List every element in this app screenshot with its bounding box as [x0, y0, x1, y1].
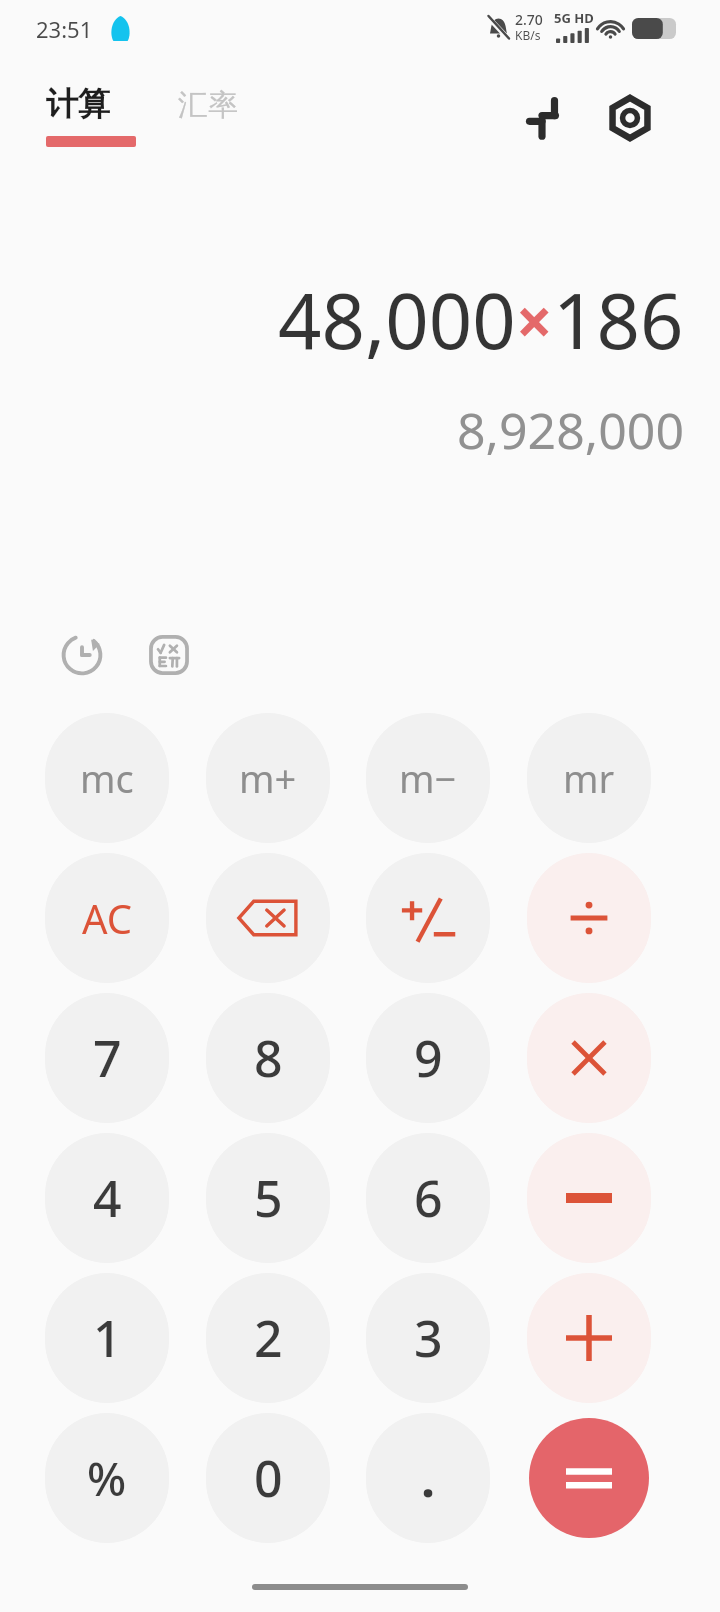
staticText: 3	[414, 1304, 443, 1372]
staticText: 4	[93, 1164, 122, 1232]
staticText: %	[87, 1447, 127, 1510]
button[interactable]: 计算	[30, 78, 148, 164]
button[interactable]: History	[50, 623, 114, 687]
button[interactable]: 汇率	[168, 78, 272, 138]
button[interactable]: 1	[45, 1273, 169, 1403]
staticText: .	[421, 1444, 436, 1512]
staticText: 1	[93, 1304, 122, 1372]
button[interactable]: 0	[206, 1413, 330, 1543]
button[interactable]: %	[45, 1413, 169, 1543]
button[interactable]: mc	[45, 713, 169, 843]
button[interactable]: Scientific mode	[137, 623, 201, 687]
button[interactable]: Backspace	[206, 853, 330, 983]
staticText: 2.70	[515, 10, 543, 29]
button[interactable]: Add	[527, 1273, 651, 1403]
staticText: mc	[80, 752, 134, 804]
button[interactable]: Plus minus sign	[366, 853, 490, 983]
staticText: 23:51	[36, 14, 93, 44]
button[interactable]: .	[366, 1413, 490, 1543]
staticText: 5G HD	[554, 9, 594, 27]
staticText: 汇率	[178, 86, 238, 124]
button[interactable]: m−	[366, 713, 490, 843]
staticText: 186	[553, 268, 684, 372]
staticText: ×	[516, 277, 553, 364]
staticText: 0	[254, 1444, 283, 1512]
button[interactable]: Divide	[527, 853, 651, 983]
staticText: KB/s	[515, 27, 541, 43]
button[interactable]: Settings	[592, 80, 668, 156]
button[interactable]: 6	[366, 1133, 490, 1263]
button[interactable]: 7	[45, 993, 169, 1123]
staticText: AC	[82, 891, 133, 945]
button[interactable]: Collapse	[504, 80, 580, 156]
button[interactable]: 3	[366, 1273, 490, 1403]
staticText: 7	[93, 1024, 122, 1092]
button[interactable]: 8	[206, 993, 330, 1123]
button[interactable]: 5	[206, 1133, 330, 1263]
staticText: 2	[254, 1304, 283, 1372]
staticText: 8	[254, 1024, 283, 1092]
button[interactable]: 2	[206, 1273, 330, 1403]
button[interactable]: m+	[206, 713, 330, 843]
staticText: m−	[399, 752, 457, 804]
staticText: 48,000	[278, 268, 516, 372]
staticText: 5	[254, 1164, 283, 1232]
button[interactable]: mr	[527, 713, 651, 843]
staticText: mr	[563, 752, 615, 804]
staticText: 9	[414, 1024, 443, 1092]
staticText: m+	[239, 752, 297, 804]
staticText: 计算	[46, 84, 110, 124]
button[interactable]: Subtract	[527, 1133, 651, 1263]
button[interactable]: Equals	[529, 1418, 649, 1538]
staticText: 6	[414, 1164, 443, 1232]
button[interactable]: AC	[45, 853, 169, 983]
button[interactable]: 4	[45, 1133, 169, 1263]
button[interactable]: Multiply	[527, 993, 651, 1123]
staticText: 8,928,000	[0, 396, 684, 464]
button[interactable]: 9	[366, 993, 490, 1123]
